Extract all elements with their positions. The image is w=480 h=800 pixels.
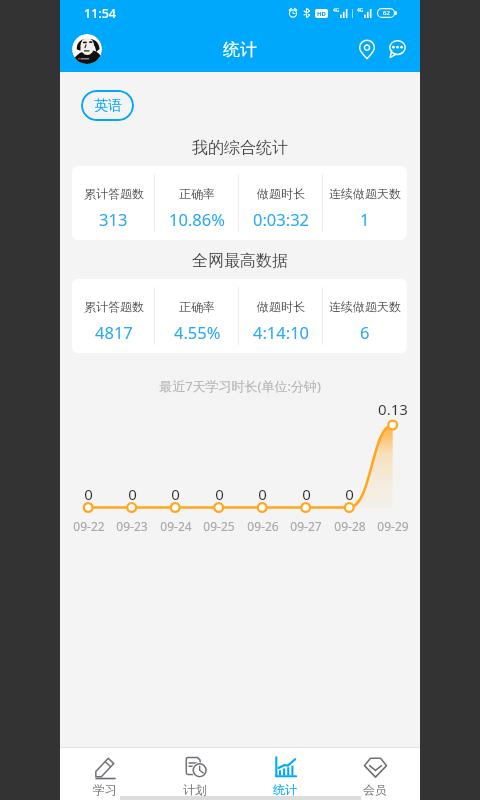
staticText: 62 xyxy=(383,9,390,17)
staticText: 英语 xyxy=(94,97,122,115)
staticText: 连续做题天数 xyxy=(329,186,401,201)
staticText: 我的综合统计 xyxy=(60,138,420,158)
staticText: 0 xyxy=(258,484,267,504)
button[interactable]: 英语 xyxy=(81,90,134,121)
staticText: 学习 xyxy=(93,782,117,797)
staticText: 0 xyxy=(215,484,224,504)
staticText: 正确率 xyxy=(179,299,215,314)
staticText: 累计答题数 xyxy=(84,186,144,201)
staticText: 0 xyxy=(84,484,93,504)
staticText: 做题时长 xyxy=(257,186,305,201)
staticText: HD xyxy=(317,10,326,18)
staticText: 09-24 xyxy=(160,518,192,534)
button[interactable]: 计划 xyxy=(150,748,240,800)
staticText: 4.55% xyxy=(174,321,221,343)
staticText: 11:54 xyxy=(84,5,117,22)
staticText: 09-25 xyxy=(203,518,235,534)
staticText: 连续做题天数 xyxy=(329,299,401,314)
staticText: 313 xyxy=(99,208,128,230)
staticText: 09-29 xyxy=(377,518,409,534)
staticText: 4G xyxy=(333,7,340,14)
staticText: 09-26 xyxy=(247,518,279,534)
button[interactable]: Location xyxy=(352,34,382,64)
button[interactable]: 学习 xyxy=(60,748,150,800)
staticText: 累计答题数 xyxy=(84,299,144,314)
staticText: 统计 xyxy=(223,39,257,60)
staticText: 0.13 xyxy=(378,399,408,419)
staticText: 10.86% xyxy=(169,208,225,230)
staticText: 做题时长 xyxy=(257,299,305,314)
staticText: 09-22 xyxy=(73,518,105,534)
staticText: 0 xyxy=(128,484,137,504)
staticText: 4817 xyxy=(95,321,133,343)
button[interactable]: Messages xyxy=(382,34,412,64)
staticText: 会员 xyxy=(363,782,387,797)
staticText: 0:03:32 xyxy=(253,208,310,230)
staticText: 0 xyxy=(171,484,180,504)
button[interactable]: Profile xyxy=(72,34,102,64)
staticText: 6 xyxy=(360,321,370,343)
staticText: 最近7天学习时长(单位:分钟) xyxy=(60,377,420,395)
staticText: 09-28 xyxy=(334,518,366,534)
button[interactable]: 统计 xyxy=(240,748,330,800)
staticText: 4G xyxy=(357,7,364,14)
staticText: 09-27 xyxy=(290,518,322,534)
button[interactable]: 会员 xyxy=(330,748,420,800)
staticText: 1 xyxy=(360,208,370,230)
staticText: 统计 xyxy=(273,782,297,797)
staticText: 计划 xyxy=(183,782,207,797)
staticText: 正确率 xyxy=(179,186,215,201)
staticText: 4:14:10 xyxy=(253,321,310,343)
staticText: 0 xyxy=(345,484,354,504)
staticText: 全网最高数据 xyxy=(60,251,420,271)
staticText: 0 xyxy=(302,484,311,504)
staticText: 09-23 xyxy=(116,518,148,534)
